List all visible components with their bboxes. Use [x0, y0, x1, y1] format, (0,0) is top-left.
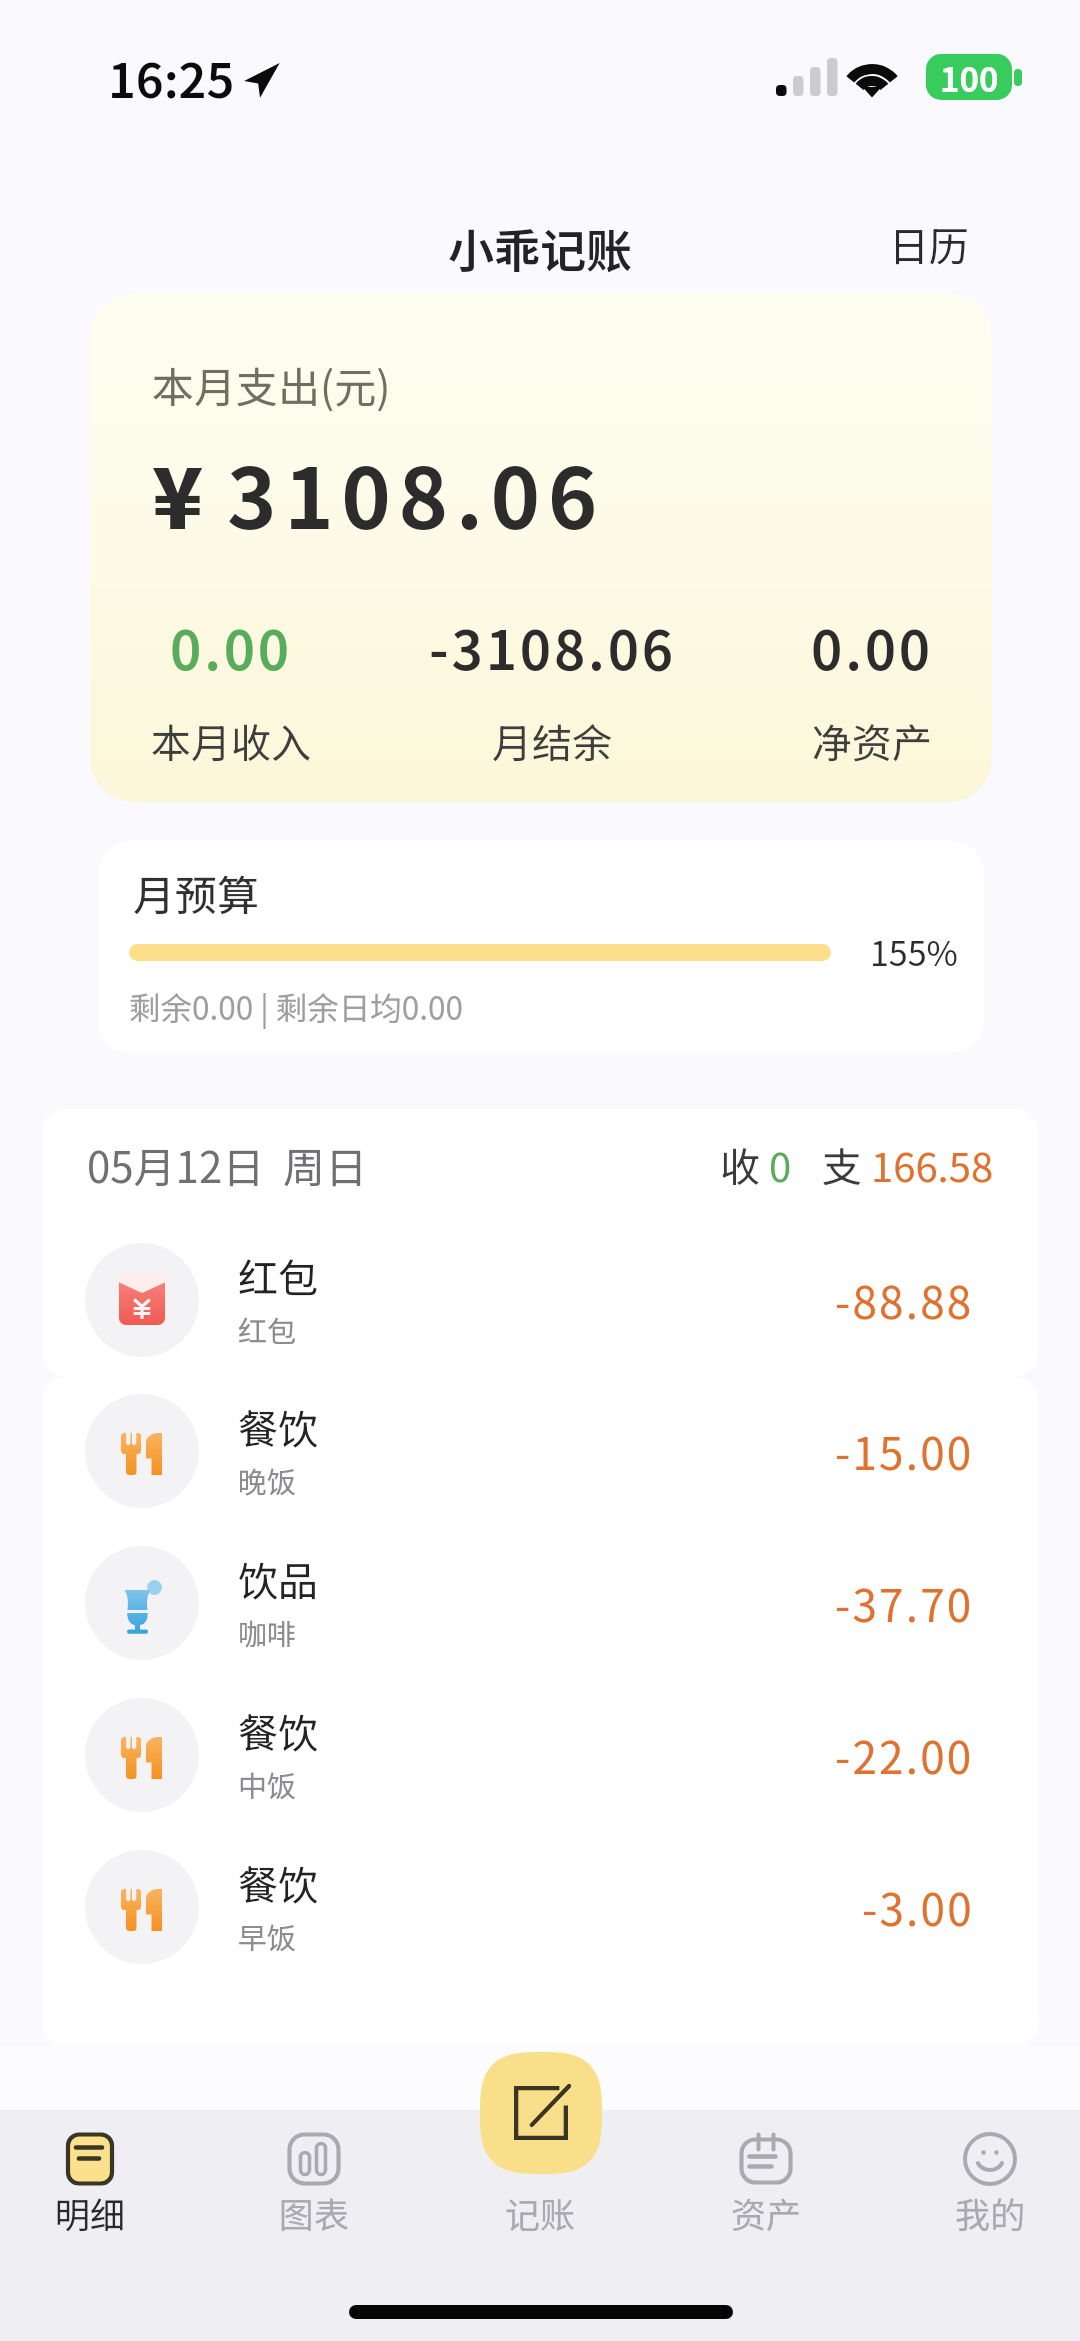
staticText: 月预算: [133, 862, 260, 923]
staticText: -88.88: [835, 1268, 974, 1332]
staticText: 红包: [238, 1308, 297, 1350]
button[interactable]: 资产: [666, 2115, 866, 2245]
staticText: 166.58: [871, 1136, 994, 1194]
staticText: 155%: [870, 927, 958, 976]
staticText: 资产: [731, 2187, 802, 2238]
staticText: 收: [720, 1136, 769, 1194]
staticText: -15.00: [835, 1419, 974, 1483]
staticText: 0.00: [811, 607, 933, 685]
button[interactable]: 我的: [890, 2115, 1080, 2245]
staticText: 餐饮: [238, 1702, 318, 1760]
button[interactable]: 餐饮: [42, 1831, 1039, 1983]
staticText: 100: [940, 54, 999, 100]
staticText: ¥: [152, 432, 204, 554]
staticText: -22.00: [835, 1723, 974, 1787]
staticText: 早饭: [238, 1915, 297, 1957]
button[interactable]: 0.00: [90, 607, 391, 770]
staticText: 饮品: [238, 1550, 318, 1608]
staticText: 0: [769, 1136, 792, 1194]
button[interactable]: 明细: [0, 2115, 190, 2245]
button[interactable]: 餐饮: [42, 1679, 1039, 1831]
staticText: 05月12日 周日: [87, 1134, 368, 1195]
button[interactable]: 饮品: [42, 1527, 1039, 1679]
staticText: 16:25: [108, 42, 235, 112]
staticText: 净资产: [812, 712, 932, 770]
staticText: 剩余0.00 | 剩余日均0.00: [129, 983, 464, 1029]
staticText: 支: [822, 1136, 871, 1194]
staticText: -3.00: [862, 1875, 974, 1939]
staticText: 小乖记账: [448, 215, 632, 282]
staticText: 本月支出(元): [152, 354, 391, 415]
staticText: 0.00: [170, 607, 292, 685]
staticText: -3108.06: [429, 607, 676, 685]
button[interactable]: 记账: [440, 2115, 640, 2245]
staticText: 中饭: [238, 1763, 297, 1805]
staticText: 日历: [889, 215, 969, 273]
staticText: 我的: [955, 2187, 1026, 2238]
staticText: 月结余: [492, 712, 612, 770]
staticText: 晚饭: [238, 1459, 297, 1501]
button[interactable]: 餐饮: [42, 1377, 1039, 1527]
button[interactable]: 月预算: [98, 841, 984, 1053]
button[interactable]: 记账: [480, 2052, 602, 2174]
staticText: 本月收入: [151, 712, 311, 770]
staticText: 明细: [55, 2187, 126, 2238]
staticText: 3108.06: [227, 432, 605, 554]
staticText: 红包: [238, 1247, 318, 1305]
button[interactable]: 红包: [42, 1224, 1039, 1376]
button[interactable]: -3108.06: [392, 607, 712, 770]
button[interactable]: 本月支出(元): [90, 293, 992, 802]
staticText: 咖啡: [238, 1611, 297, 1653]
button[interactable]: 图表: [214, 2115, 414, 2245]
staticText: -37.70: [835, 1571, 974, 1635]
button[interactable]: 0.00: [712, 607, 992, 770]
staticText: 餐饮: [238, 1854, 318, 1912]
button[interactable]: 05月12日 周日: [42, 1109, 1039, 1224]
staticText: 记账: [505, 2187, 576, 2238]
button[interactable]: 日历: [873, 209, 985, 287]
staticText: 图表: [279, 2187, 350, 2238]
staticText: 餐饮: [238, 1398, 318, 1456]
